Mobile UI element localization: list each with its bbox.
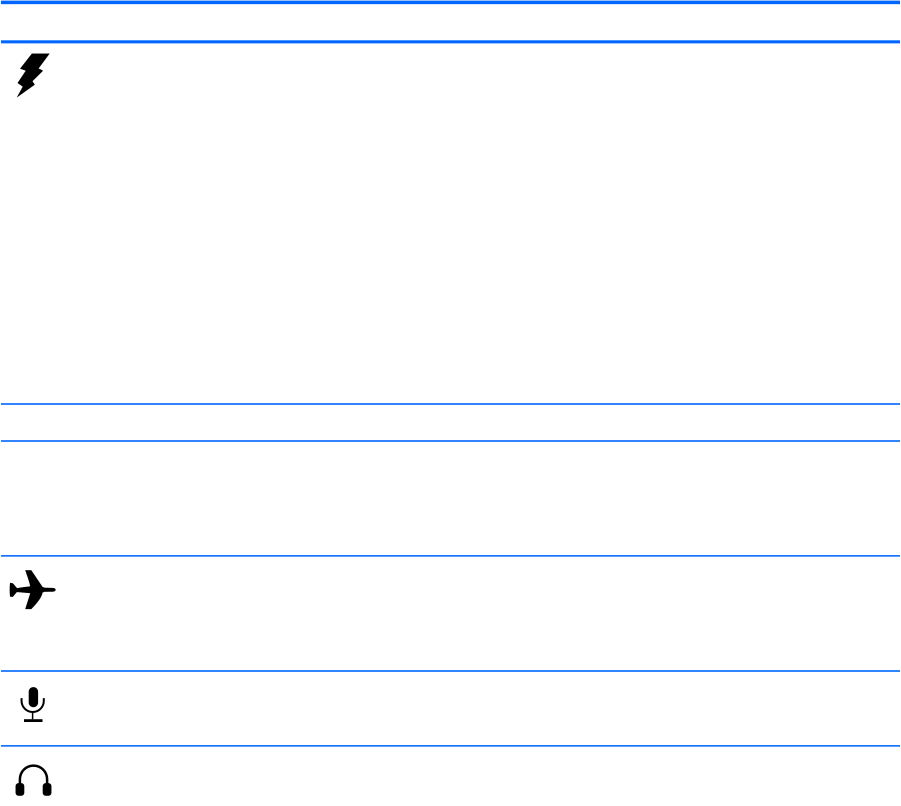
button[interactable]: Airplane mode — [0, 557, 901, 672]
button[interactable]: Headphones — [0, 747, 901, 806]
button[interactable]: AC power — [0, 44, 901, 405]
button[interactable]: Microphone — [0, 672, 901, 747]
